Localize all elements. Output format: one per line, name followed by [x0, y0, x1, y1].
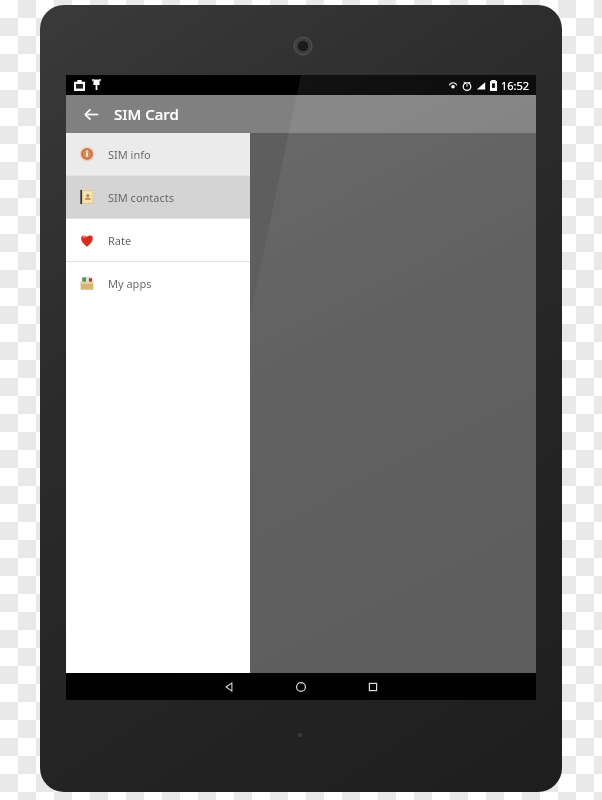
staticText: My apps — [108, 276, 152, 291]
button[interactable]: Back — [74, 97, 108, 131]
staticText: SIM Card — [114, 104, 179, 124]
button[interactable]: Back — [206, 673, 252, 700]
button[interactable]: Home — [278, 673, 324, 700]
button[interactable]: SIM info — [66, 133, 250, 175]
staticText: Rate — [108, 233, 132, 248]
staticText: SIM contacts — [108, 190, 174, 205]
button[interactable]: SIM contacts — [66, 176, 250, 218]
button[interactable]: Recents — [350, 673, 396, 700]
staticText: SIM info — [108, 147, 151, 162]
staticText: 16:52 — [501, 78, 530, 93]
button[interactable]: My apps — [66, 262, 250, 304]
button[interactable]: Rate — [66, 219, 250, 261]
